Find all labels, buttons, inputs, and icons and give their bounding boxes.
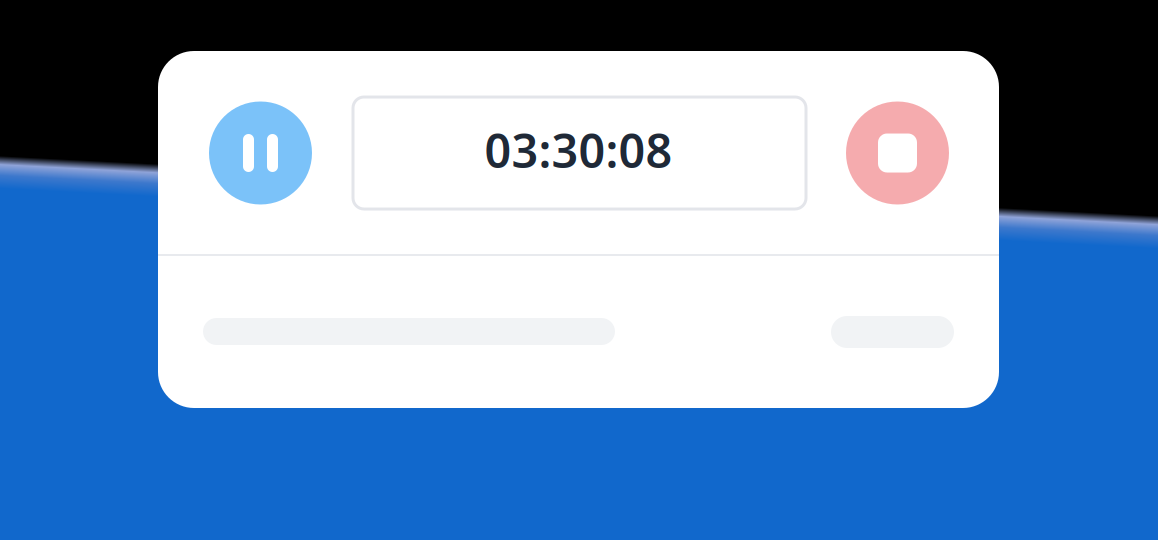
button[interactable]: Pause timer	[209, 101, 312, 204]
staticText: 03:30:08	[484, 119, 672, 181]
button[interactable]: Stop timer	[846, 101, 949, 204]
